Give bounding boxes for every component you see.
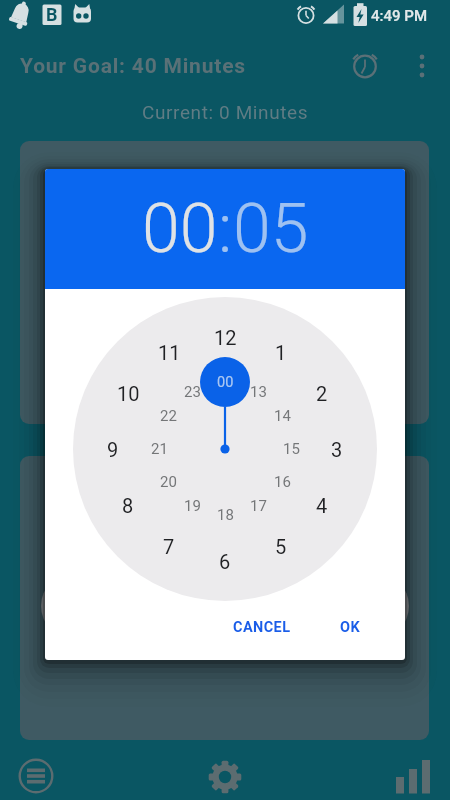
staticText: 18 (217, 506, 234, 524)
staticText: 00 (217, 374, 234, 391)
staticText: : (218, 189, 233, 269)
staticText: 23 (184, 383, 201, 401)
staticText: 11 (158, 341, 181, 364)
staticText: 17 (250, 497, 267, 515)
staticText: 14 (274, 407, 291, 425)
staticText: 2 (316, 382, 328, 405)
staticText: 4 (316, 494, 328, 517)
staticText: OK (340, 619, 361, 636)
staticText: 19 (184, 497, 201, 515)
staticText: Your Goal: 40 Minutes (20, 54, 246, 79)
staticText: Current: 0 Minutes (142, 101, 309, 123)
staticText: 13 (250, 383, 267, 401)
staticText: 16 (274, 473, 291, 491)
staticText: B (46, 4, 58, 25)
staticText: 6 (219, 550, 231, 573)
staticText: 9 (107, 438, 119, 461)
staticText: 22 (160, 407, 177, 425)
button[interactable] (408, 52, 436, 82)
button[interactable] (18, 758, 54, 794)
button[interactable]: Your Goal: 40 Minutes (20, 52, 320, 80)
staticText: 10 (117, 382, 140, 405)
button[interactable]: OK (325, 607, 375, 647)
button[interactable]: 00 (205, 368, 245, 396)
staticText: 7 (163, 535, 175, 558)
staticText: 21 (151, 440, 168, 458)
staticText: 05 (233, 189, 309, 269)
staticText: 8 (122, 494, 134, 517)
staticText: 15 (283, 440, 300, 458)
staticText: 1 (275, 341, 287, 364)
staticText: CANCEL (233, 619, 291, 636)
staticText: 12 (214, 326, 237, 349)
staticText: 5 (275, 535, 287, 558)
staticText: 3 (331, 438, 343, 461)
staticText: 00 (142, 189, 218, 269)
staticText: 20 (160, 473, 177, 491)
staticText: 4:49 PM (371, 7, 428, 25)
button[interactable] (350, 52, 380, 82)
button[interactable] (394, 758, 432, 794)
button[interactable] (207, 759, 243, 795)
button[interactable]: CANCEL (219, 607, 305, 647)
